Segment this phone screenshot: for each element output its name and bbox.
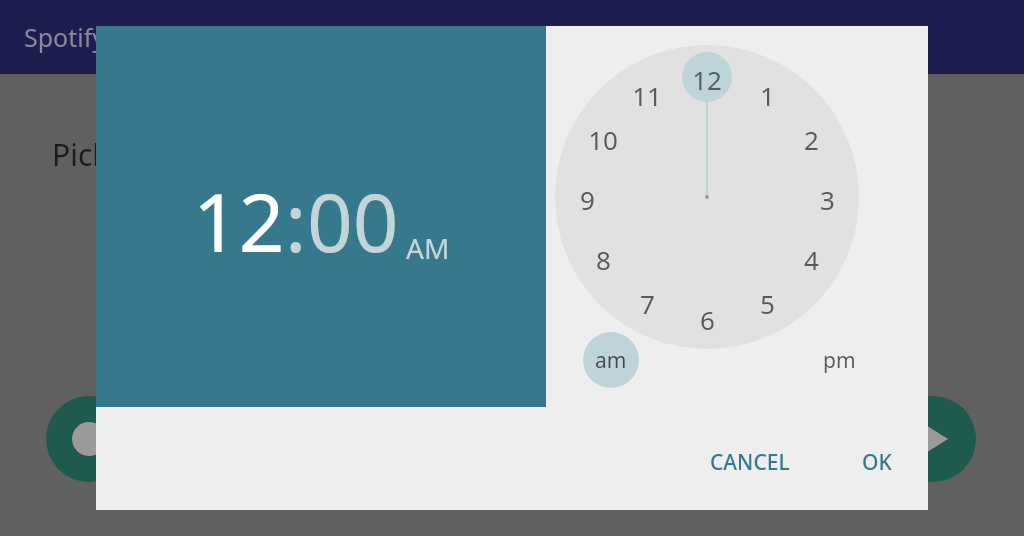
- button[interactable]: 4: [789, 237, 833, 281]
- staticText: 12: [692, 62, 722, 97]
- staticText: 5: [760, 286, 775, 321]
- staticText: Pick a time: [52, 134, 205, 175]
- button[interactable]: 2: [789, 117, 833, 161]
- button[interactable]: OK: [848, 438, 906, 487]
- staticText: 4: [804, 242, 819, 277]
- button[interactable]: am: [583, 332, 639, 388]
- staticText: 2: [804, 122, 819, 157]
- staticText: Spotify: [24, 20, 106, 54]
- button[interactable]: pm: [811, 332, 867, 388]
- staticText: 10: [588, 122, 618, 157]
- button[interactable]: 00: [307, 166, 399, 275]
- button[interactable]: 10: [581, 117, 625, 161]
- staticText: 11: [632, 78, 662, 113]
- staticText: AM: [406, 229, 450, 267]
- staticText: :: [285, 166, 307, 275]
- staticText: 6: [700, 302, 715, 337]
- button[interactable]: 12: [193, 166, 285, 275]
- button[interactable]: 6: [685, 297, 729, 341]
- staticText: 7: [640, 286, 655, 321]
- staticText: pm: [823, 346, 856, 375]
- staticText: 1: [760, 78, 775, 113]
- staticText: 3: [820, 182, 835, 217]
- button[interactable]: 12: [685, 57, 729, 101]
- staticText: CANCEL: [710, 448, 790, 477]
- staticText: OK: [862, 448, 892, 477]
- button[interactable]: 3: [805, 177, 849, 221]
- button[interactable]: CANCEL: [696, 438, 804, 487]
- button[interactable]: 5: [745, 281, 789, 325]
- button[interactable]: 9: [565, 177, 609, 221]
- staticText: 9: [580, 182, 595, 217]
- button[interactable]: 8: [581, 237, 625, 281]
- button[interactable]: 1: [745, 73, 789, 117]
- button[interactable]: Play: [890, 396, 976, 482]
- staticText: am: [595, 346, 627, 375]
- button[interactable]: Set time: [46, 396, 132, 482]
- button[interactable]: 11: [625, 73, 669, 117]
- button[interactable]: 7: [625, 281, 669, 325]
- staticText: 8: [596, 242, 611, 277]
